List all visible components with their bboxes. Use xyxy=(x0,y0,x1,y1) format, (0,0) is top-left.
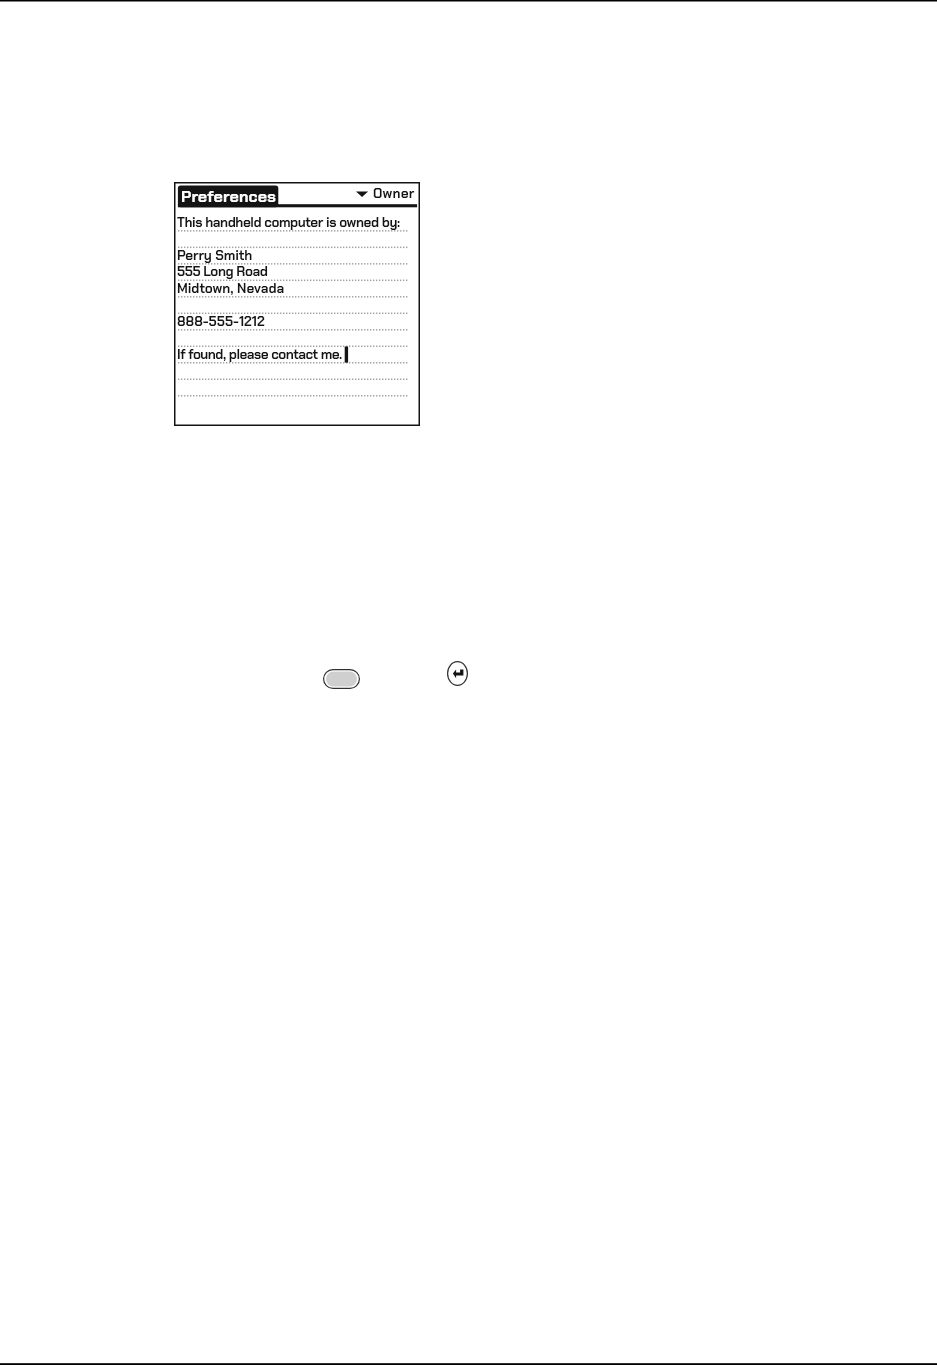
staticText: 888-555-1212 xyxy=(177,313,265,331)
button[interactable]: Preferences xyxy=(178,185,278,207)
staticText: Preferences xyxy=(181,186,277,207)
staticText: 555 Long Road xyxy=(177,263,268,281)
staticText: This handheld computer is owned by: xyxy=(177,214,400,232)
button[interactable]: Scroll xyxy=(323,669,360,689)
button[interactable]: Enter xyxy=(447,661,468,686)
staticText: Owner xyxy=(373,185,415,203)
staticText: If found, please contact me. xyxy=(177,346,342,364)
button[interactable]: Owner xyxy=(352,186,418,204)
staticText: Perry Smith xyxy=(177,247,253,265)
staticText: Midtown, Nevada xyxy=(177,280,285,298)
